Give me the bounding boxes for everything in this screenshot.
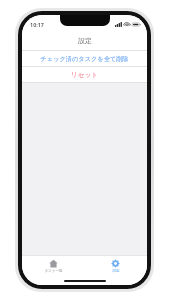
staticText: タスク一覧 — [44, 269, 63, 274]
button[interactable]: Settings — [84, 256, 147, 276]
staticText: 設定 — [112, 269, 120, 274]
staticText: 設定 — [78, 36, 92, 45]
staticText: 10:17 — [30, 21, 44, 28]
button[interactable]: リセット — [22, 67, 147, 82]
staticText: チェック済のタスクを全て削除 — [40, 55, 129, 63]
button[interactable]: Task list — [22, 256, 84, 276]
staticText: リセット — [71, 71, 98, 79]
button[interactable]: チェック済のタスクを全て削除 — [22, 51, 147, 66]
